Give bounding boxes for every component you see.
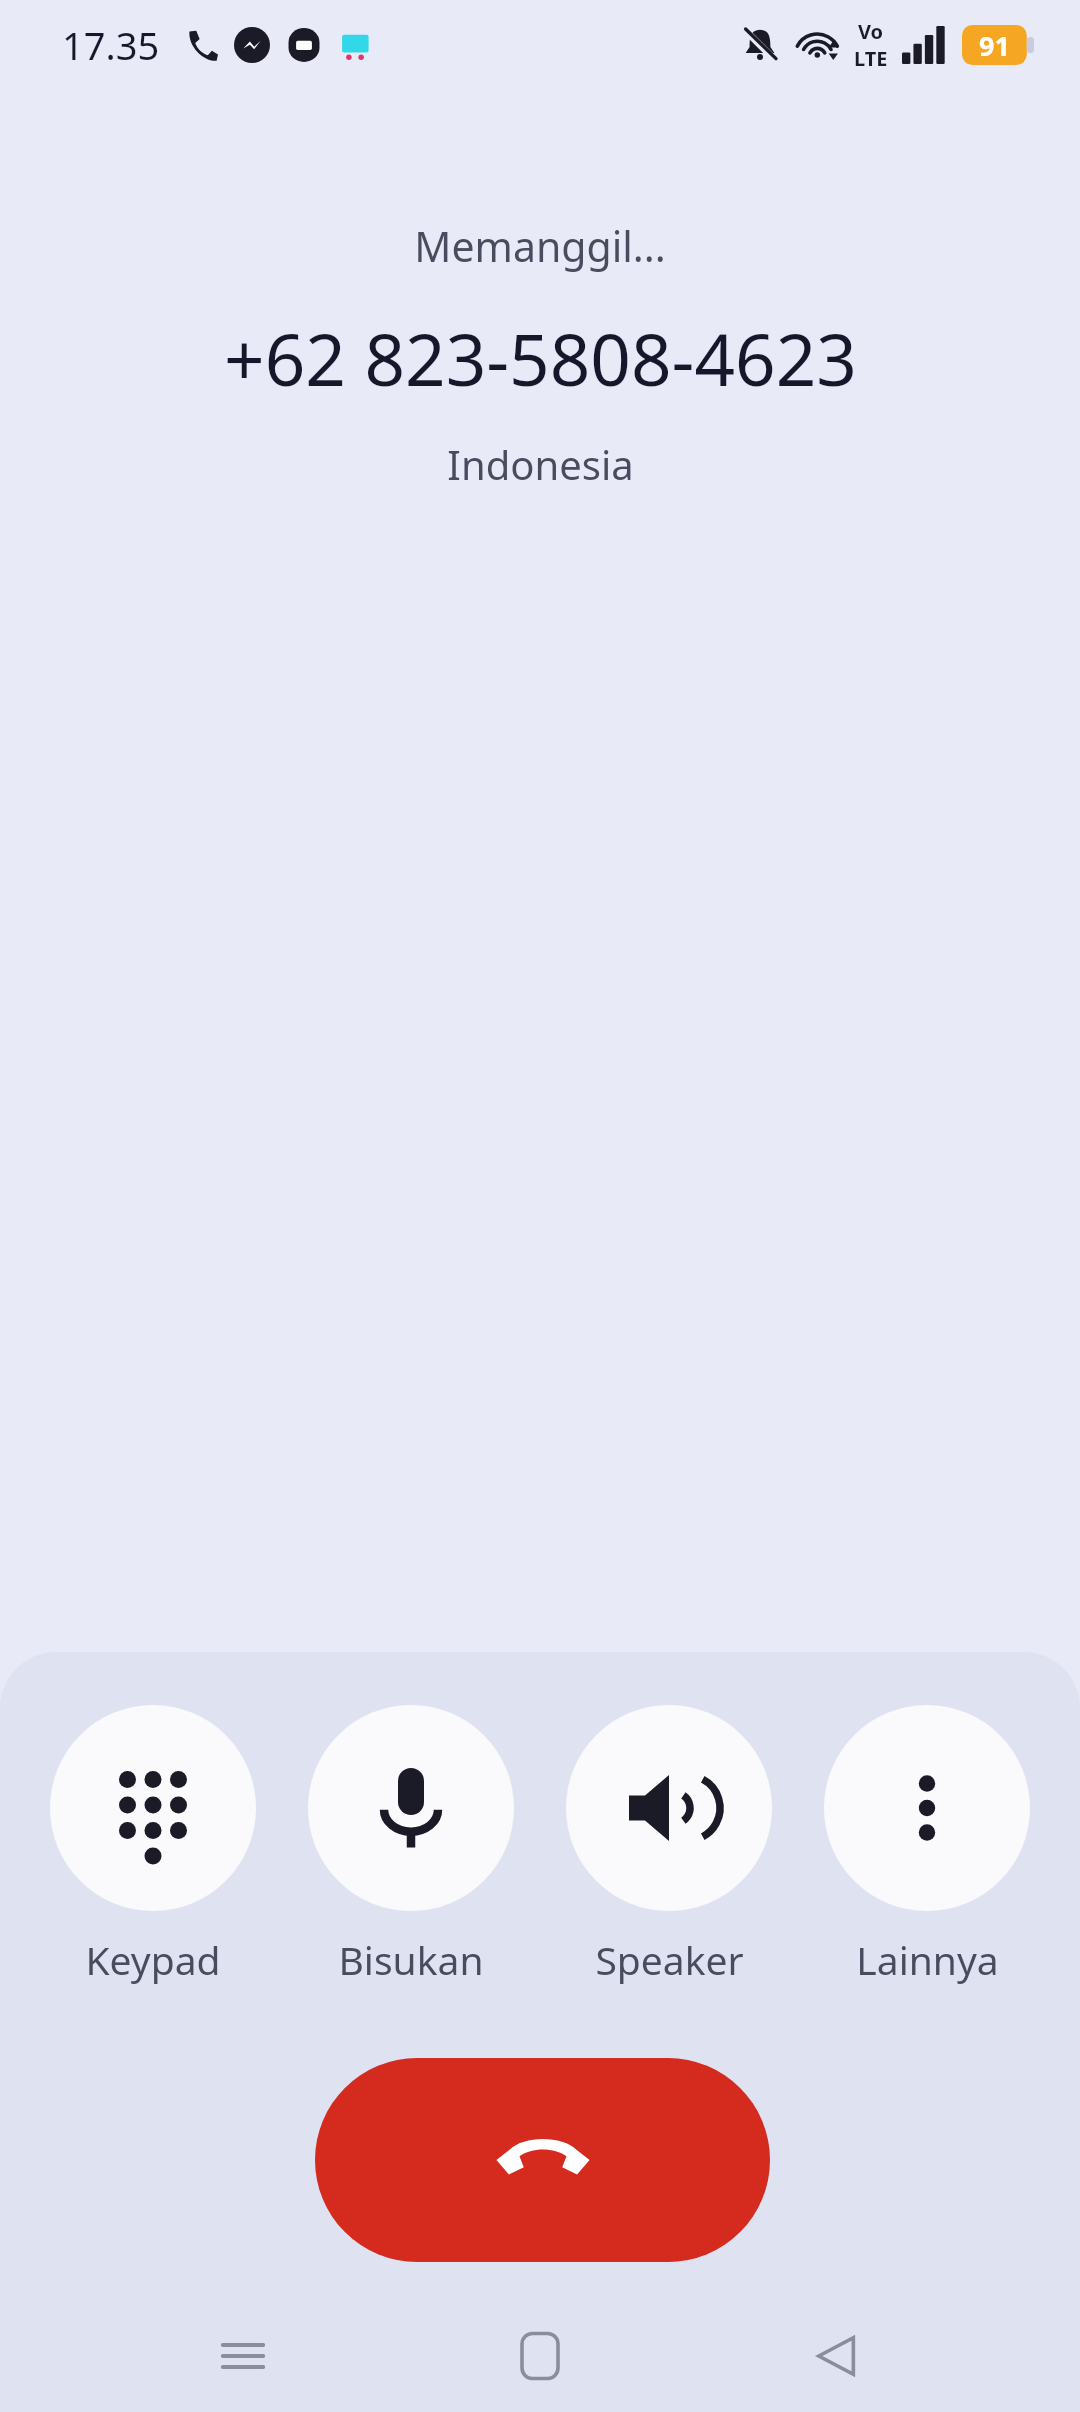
staticText: Bisukan: [338, 1933, 484, 1986]
staticText: Speaker: [595, 1933, 744, 1986]
staticText: Memanggil...: [414, 218, 666, 274]
button[interactable]: Keypad: [50, 1705, 256, 1911]
staticText: Indonesia: [447, 437, 634, 491]
staticText: 91: [979, 27, 1010, 64]
button[interactable]: Recent apps: [188, 2301, 298, 2411]
button[interactable]: Home: [485, 2301, 595, 2411]
staticText: Vo: [858, 18, 884, 45]
staticText: Lainnya: [856, 1933, 999, 1986]
staticText: LTE: [854, 45, 888, 72]
button[interactable]: Bisukan: [308, 1705, 514, 1911]
button[interactable]: Speaker: [566, 1705, 772, 1911]
button[interactable]: End call: [315, 2058, 770, 2262]
staticText: +62 823-5808-4623: [224, 310, 857, 407]
staticText: 17.35: [62, 19, 160, 71]
staticText: Keypad: [85, 1933, 221, 1986]
button[interactable]: Back: [783, 2301, 893, 2411]
button[interactable]: Lainnya: [824, 1705, 1030, 1911]
